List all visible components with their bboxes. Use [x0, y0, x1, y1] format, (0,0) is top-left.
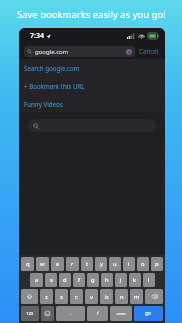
button[interactable]: Shift [21, 289, 38, 304]
staticText: s [50, 276, 53, 284]
staticText: q [26, 260, 30, 268]
staticText: t [86, 260, 89, 268]
staticText: Funny Videos [24, 100, 63, 108]
button[interactable]: t [81, 257, 93, 271]
button[interactable]: + Bookmark this URL [19, 77, 165, 95]
staticText: x [60, 293, 64, 301]
staticText: b [105, 293, 109, 301]
staticText: h [105, 276, 109, 284]
button[interactable]: 123 [21, 306, 39, 321]
staticText: y [100, 260, 103, 268]
staticText: google.com [35, 48, 69, 56]
button[interactable]: m [130, 289, 143, 304]
button[interactable]: y [95, 257, 107, 271]
staticText: a [35, 276, 39, 284]
staticText: k [133, 276, 137, 284]
button[interactable]: e [51, 257, 64, 271]
button[interactable]: Clear text [126, 49, 132, 55]
staticText: Cancel [139, 47, 159, 55]
button[interactable]: p [151, 257, 163, 271]
button[interactable]: .com [110, 306, 132, 321]
button[interactable]: l [143, 273, 155, 287]
staticText: 123 [26, 311, 34, 317]
button[interactable]: z [40, 289, 53, 304]
staticText: o [141, 260, 145, 268]
button[interactable]: k [129, 273, 141, 287]
button[interactable]: u [109, 257, 121, 271]
staticText: Google [62, 85, 123, 110]
staticText: r [71, 260, 74, 268]
staticText: n [120, 293, 124, 301]
staticText: m [134, 293, 140, 301]
staticText: e [56, 260, 60, 268]
button[interactable]: Cancel [135, 47, 160, 55]
staticText: g [91, 276, 95, 284]
staticText: p [155, 260, 159, 268]
button[interactable]: / [87, 306, 108, 321]
button[interactable]: go [134, 306, 163, 321]
staticText: Save bookmarks easily as you go! [17, 8, 166, 21]
button[interactable]: n [115, 289, 128, 304]
staticText: go [145, 310, 152, 317]
button[interactable]: Backspace [145, 289, 163, 304]
staticText: + Bookmark this URL [24, 82, 85, 90]
button[interactable]: c [70, 289, 83, 304]
staticText: w [40, 260, 45, 268]
staticText: v [90, 293, 93, 301]
staticText: d [63, 276, 67, 284]
staticText: . [70, 310, 72, 317]
staticText: i [128, 260, 130, 268]
button[interactable]: h [101, 273, 113, 287]
button[interactable]: s [45, 273, 57, 287]
button[interactable]: d [59, 273, 71, 287]
button[interactable]: g [87, 273, 99, 287]
staticText: l [148, 276, 150, 284]
button[interactable]: b [100, 289, 113, 304]
staticText: j [120, 276, 122, 284]
button[interactable]: i [123, 257, 135, 271]
button[interactable]: a [30, 273, 43, 287]
button[interactable]: Funny Videos [19, 95, 165, 112]
staticText: / [97, 310, 99, 317]
button[interactable]: Search google.com [19, 59, 165, 77]
button[interactable]: j [115, 273, 127, 287]
staticText: 7:34 [30, 31, 44, 41]
staticText: u [113, 260, 117, 268]
button[interactable]: q [21, 257, 34, 271]
button[interactable]: v [85, 289, 98, 304]
staticText: z [45, 293, 48, 301]
staticText: f [78, 276, 80, 284]
button[interactable]: . [56, 306, 85, 321]
staticText: .com [116, 311, 126, 317]
button[interactable]: o [137, 257, 149, 271]
button[interactable]: x [55, 289, 68, 304]
button[interactable] [28, 119, 156, 132]
button[interactable]: Emoji [41, 306, 54, 321]
staticText: Search google.com [24, 64, 80, 72]
button[interactable]: r [66, 257, 79, 271]
button[interactable]: w [36, 257, 49, 271]
staticText: c [75, 293, 78, 301]
button[interactable]: f [73, 273, 85, 287]
button[interactable]: google.com [24, 46, 135, 57]
